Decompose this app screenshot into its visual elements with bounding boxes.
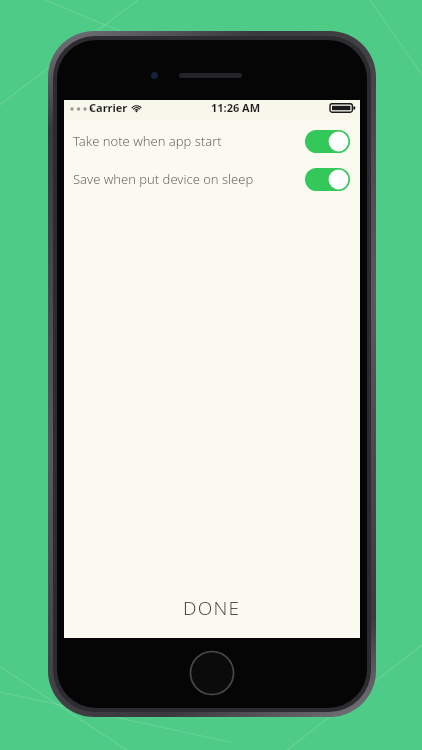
staticText: 11:26 AM: [211, 100, 261, 115]
button[interactable]: Save when put device on sleep: [64, 166, 360, 192]
staticText: Take note when app start: [73, 132, 222, 150]
staticText: DONE: [183, 595, 241, 621]
staticText: Save when put device on sleep: [73, 170, 254, 188]
button[interactable]: Toggle on: [305, 168, 350, 191]
button[interactable]: Toggle on: [305, 130, 350, 153]
button[interactable]: Take note when app start: [64, 128, 360, 154]
button[interactable]: DONE: [64, 582, 360, 634]
staticText: Carrier: [89, 100, 128, 115]
